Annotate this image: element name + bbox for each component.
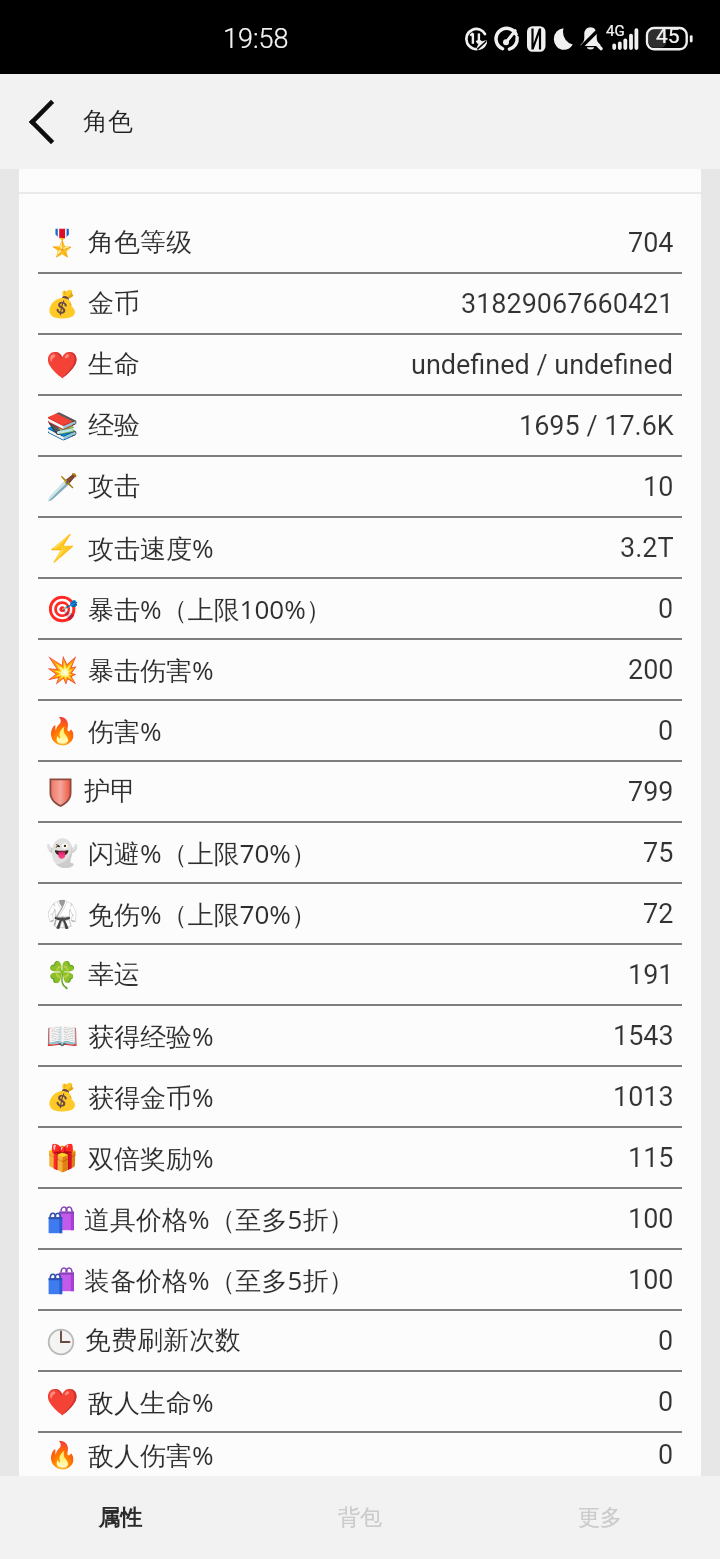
- staticText: 0: [658, 1325, 674, 1357]
- button[interactable]: 更多: [480, 1476, 720, 1559]
- staticText: ❤️: [46, 1387, 79, 1417]
- staticText: 191: [628, 959, 674, 991]
- staticText: 🔥: [46, 1440, 79, 1470]
- staticText: 免费刷新次数: [85, 1324, 241, 1357]
- button[interactable]: 免费刷新次数: [19, 1311, 701, 1370]
- staticText: 0: [658, 1439, 674, 1471]
- staticText: 🎖️: [46, 228, 79, 258]
- button[interactable]: 🥋: [19, 884, 701, 943]
- button[interactable]: 装备价格%（至多5折）: [19, 1250, 701, 1309]
- button[interactable]: 道具价格%（至多5折）: [19, 1189, 701, 1248]
- staticText: 攻击: [88, 470, 140, 503]
- staticText: 经验: [88, 409, 140, 442]
- button[interactable]: 💰: [19, 1067, 701, 1126]
- staticText: 敌人伤害%: [88, 1437, 214, 1473]
- button[interactable]: 👻: [19, 823, 701, 882]
- button[interactable]: 🗡️: [19, 457, 701, 516]
- staticText: 👻: [46, 838, 79, 868]
- button[interactable]: 💥: [19, 640, 701, 699]
- staticText: 0: [658, 715, 674, 747]
- staticText: 31829067660421: [461, 288, 674, 320]
- button[interactable]: ⚡: [19, 518, 701, 577]
- button[interactable]: 🎯: [19, 579, 701, 638]
- staticText: 角色: [83, 106, 133, 137]
- staticText: 💥: [46, 655, 79, 685]
- staticText: 敌人生命%: [88, 1384, 214, 1420]
- staticText: 双倍奖励%: [88, 1140, 214, 1176]
- staticText: 金币: [88, 287, 140, 320]
- staticText: 0: [658, 593, 674, 625]
- staticText: 19:58: [223, 23, 289, 55]
- staticText: 📖: [46, 1021, 79, 1051]
- staticText: 🍀: [46, 960, 79, 990]
- button[interactable]: 属性: [0, 1476, 240, 1559]
- staticText: 装备价格%（至多5折）: [84, 1262, 355, 1298]
- button[interactable]: 🔥: [19, 1433, 701, 1476]
- staticText: 更多: [578, 1504, 622, 1532]
- staticText: 0: [658, 1386, 674, 1418]
- staticText: 1695 / 17.6K: [519, 410, 674, 442]
- staticText: 100: [628, 1203, 674, 1235]
- staticText: 暴击伤害%: [88, 652, 214, 688]
- staticText: 暴击%（上限100%）: [88, 591, 332, 627]
- staticText: 💰: [46, 1082, 79, 1112]
- staticText: 100: [628, 1264, 674, 1296]
- staticText: 获得经验%: [88, 1018, 214, 1054]
- staticText: 闪避%（上限70%）: [88, 835, 317, 871]
- staticText: 115: [628, 1142, 674, 1174]
- staticText: 幸运: [88, 958, 140, 991]
- staticText: 道具价格%（至多5折）: [84, 1201, 355, 1237]
- staticText: ❤️: [46, 350, 79, 380]
- staticText: 4G: [606, 22, 625, 40]
- button[interactable]: 背包: [240, 1476, 480, 1559]
- button[interactable]: Back: [14, 95, 68, 149]
- button[interactable]: 📖: [19, 1006, 701, 1065]
- staticText: 🎯: [46, 594, 79, 624]
- staticText: 🔥: [46, 716, 79, 746]
- staticText: 攻击速度%: [88, 530, 214, 566]
- staticText: undefined / undefined: [411, 349, 674, 381]
- staticText: 799: [628, 776, 674, 808]
- button[interactable]: 护甲: [19, 762, 701, 821]
- staticText: 75: [643, 837, 674, 869]
- button[interactable]: 🍀: [19, 945, 701, 1004]
- staticText: 1013: [613, 1081, 674, 1113]
- staticText: 🥋: [46, 899, 79, 929]
- staticText: 3.2T: [620, 532, 674, 564]
- button[interactable]: 📚: [19, 396, 701, 455]
- staticText: ⚡: [46, 533, 79, 563]
- staticText: 1543: [613, 1020, 674, 1052]
- staticText: 护甲: [84, 775, 136, 808]
- staticText: 生命: [88, 348, 140, 381]
- button[interactable]: ❤️: [19, 1372, 701, 1431]
- staticText: 🗡️: [46, 472, 79, 502]
- button[interactable]: 🎖️: [19, 213, 701, 272]
- button[interactable]: 💰: [19, 274, 701, 333]
- button[interactable]: ❤️: [19, 335, 701, 394]
- staticText: 伤害%: [88, 713, 162, 749]
- button[interactable]: 🔥: [19, 701, 701, 760]
- staticText: 200: [628, 654, 674, 686]
- button[interactable]: 🎁: [19, 1128, 701, 1187]
- staticText: 704: [628, 227, 674, 259]
- staticText: 免伤%（上限70%）: [88, 896, 317, 932]
- staticText: 🎁: [46, 1143, 79, 1173]
- staticText: 45: [656, 24, 680, 49]
- staticText: 角色等级: [88, 226, 192, 259]
- staticText: 属性: [98, 1504, 142, 1532]
- staticText: 10: [643, 471, 674, 503]
- staticText: 📚: [46, 411, 79, 441]
- staticText: 72: [643, 898, 674, 930]
- staticText: 💰: [46, 289, 79, 319]
- staticText: 背包: [338, 1504, 382, 1532]
- staticText: 获得金币%: [88, 1079, 214, 1115]
